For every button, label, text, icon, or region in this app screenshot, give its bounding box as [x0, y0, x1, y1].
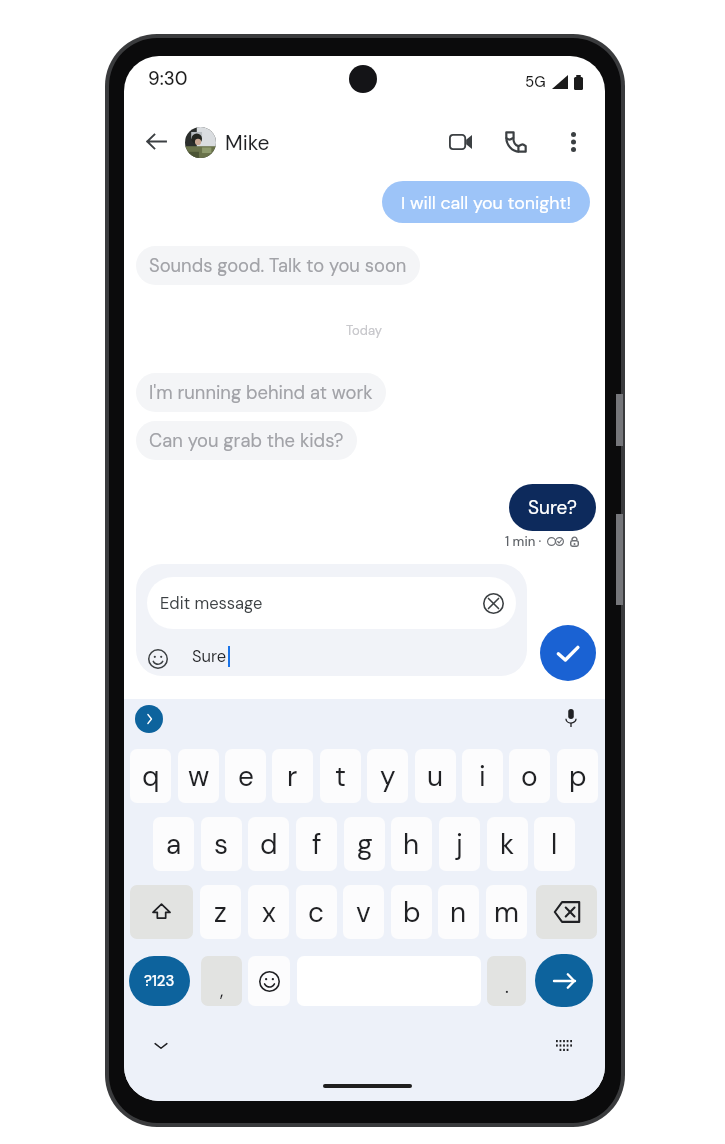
staticText: c [308, 894, 325, 930]
button[interactable]: Hide keyboard [148, 1033, 174, 1059]
staticText: Sounds good. Talk to you soon [149, 254, 407, 278]
staticText: h [403, 826, 420, 862]
button[interactable]: x [248, 885, 289, 939]
staticText: d [260, 826, 278, 862]
staticText: i [479, 758, 486, 794]
staticText: p [569, 758, 587, 794]
button[interactable]: Video call [436, 118, 484, 166]
button[interactable]: s [201, 817, 242, 871]
button[interactable]: More options [549, 118, 597, 166]
staticText: z [214, 894, 227, 930]
button[interactable]: Change keyboard [551, 1032, 577, 1058]
staticText: m [494, 894, 519, 930]
other: Emoji [148, 649, 168, 669]
button[interactable]: Shift [130, 885, 193, 939]
staticText: I will call you tonight! [401, 191, 571, 214]
staticText: Sure? [528, 495, 577, 520]
button[interactable]: j [439, 817, 480, 871]
button[interactable]: b [391, 885, 432, 939]
button[interactable]: u [415, 749, 456, 803]
button[interactable]: Voice input [557, 704, 585, 732]
button[interactable]: q [130, 749, 171, 803]
staticText: 9:30 [148, 67, 188, 91]
button[interactable]: Backspace [536, 885, 597, 939]
button[interactable]: Sure? [509, 484, 596, 531]
staticText: v [356, 894, 371, 930]
button[interactable]: z [200, 885, 241, 939]
button[interactable]: Expand suggestions [135, 705, 163, 733]
staticText: a [166, 826, 182, 862]
staticText: r [287, 758, 298, 794]
button[interactable]: i [462, 749, 503, 803]
staticText: , [220, 978, 224, 1003]
button[interactable]: a [153, 817, 194, 871]
staticText: x [262, 894, 276, 930]
staticText: u [427, 758, 444, 794]
button[interactable]: k [487, 817, 528, 871]
button[interactable]: o [509, 749, 550, 803]
button[interactable]: t [320, 749, 361, 803]
staticText: 5G [525, 72, 546, 92]
staticText: Edit message [160, 593, 263, 614]
button[interactable]: Back [132, 118, 180, 166]
staticText: l [551, 826, 558, 862]
staticText: Mike [225, 129, 270, 156]
staticText: Today [346, 322, 383, 339]
staticText: k [500, 826, 515, 862]
button[interactable]: . [487, 956, 526, 1006]
button[interactable]: w [178, 749, 219, 803]
staticText: g [357, 826, 373, 862]
staticText: q [142, 758, 160, 794]
button[interactable]: Can you grab the kids? [136, 421, 357, 460]
staticText: 1 min · [505, 533, 542, 550]
button[interactable]: I'm running behind at work [136, 373, 386, 412]
staticText: . [505, 974, 509, 999]
staticText: w [188, 758, 210, 794]
staticText: s [214, 826, 229, 862]
other: Clear [483, 593, 504, 614]
button[interactable]: p [557, 749, 598, 803]
button[interactable]: ?123 [129, 956, 190, 1006]
button[interactable]: e [225, 749, 266, 803]
button[interactable]: Edit message [147, 577, 516, 629]
button[interactable]: Send edit [540, 625, 596, 681]
staticText: Can you grab the kids? [149, 429, 344, 453]
staticText: t [335, 758, 346, 794]
button[interactable]: m [486, 885, 527, 939]
button[interactable]: f [296, 817, 337, 871]
button[interactable]: y [367, 749, 408, 803]
button[interactable]: h [391, 817, 432, 871]
button[interactable]: c [296, 885, 337, 939]
staticText: o [521, 758, 538, 794]
button[interactable]: Emoji [248, 956, 290, 1006]
staticText: j [456, 826, 463, 862]
button[interactable]: Call [492, 118, 540, 166]
button[interactable]: , [201, 956, 242, 1006]
button[interactable]: d [248, 817, 289, 871]
staticText: b [403, 894, 421, 930]
button[interactable]: I will call you tonight! [382, 181, 590, 223]
staticText: n [450, 894, 467, 930]
button[interactable]: n [438, 885, 479, 939]
staticText: I'm running behind at work [149, 381, 373, 405]
staticText: ?123 [144, 971, 175, 991]
staticText: Sure [192, 646, 227, 667]
button[interactable]: Sounds good. Talk to you soon [136, 246, 420, 285]
button[interactable]: r [272, 749, 313, 803]
button[interactable]: l [534, 817, 575, 871]
button[interactable]: Send [535, 954, 593, 1007]
staticText: f [312, 826, 322, 862]
staticText: y [380, 758, 396, 794]
button[interactable]: g [344, 817, 385, 871]
button[interactable]: v [343, 885, 384, 939]
staticText: e [238, 758, 254, 794]
